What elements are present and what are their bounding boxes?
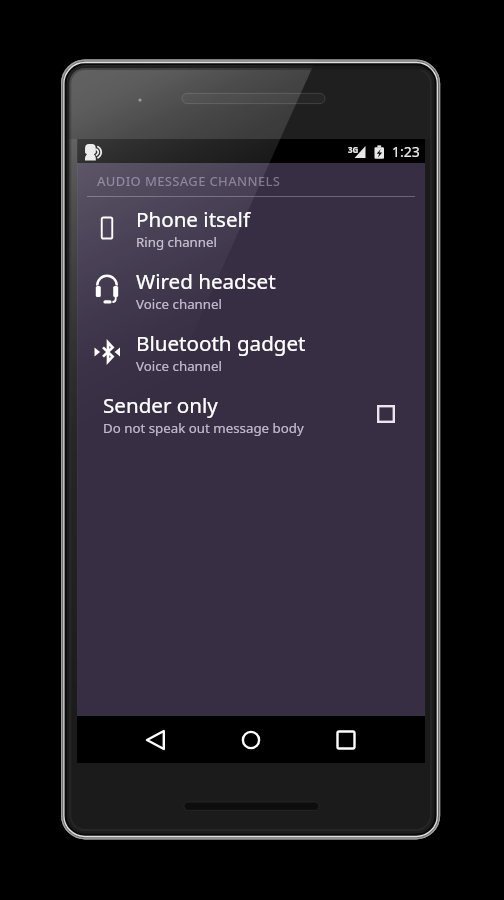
button[interactable]: Home [227, 716, 275, 763]
staticText: 1:23 [392, 142, 420, 161]
staticText: Do not speak out message body [103, 419, 304, 437]
button[interactable]: Bluetooth gadget [77, 321, 425, 383]
button[interactable]: Wired headset [77, 259, 425, 321]
button[interactable]: Phone itself [77, 197, 425, 259]
button[interactable]: Back [132, 716, 180, 763]
staticText: Sender only [103, 391, 218, 419]
staticText: Voice channel [136, 295, 222, 313]
staticText: Voice channel [136, 357, 222, 375]
staticText: Bluetooth gadget [136, 329, 306, 357]
button[interactable]: Sender only [77, 383, 425, 445]
button[interactable]: Recent apps [322, 716, 370, 763]
staticText: Ring channel [136, 233, 217, 251]
staticText: AUDIO MESSAGE CHANNELS [97, 172, 281, 190]
staticText: 3G [348, 144, 359, 155]
staticText: Phone itself [136, 205, 250, 233]
staticText: Wired headset [136, 267, 276, 295]
